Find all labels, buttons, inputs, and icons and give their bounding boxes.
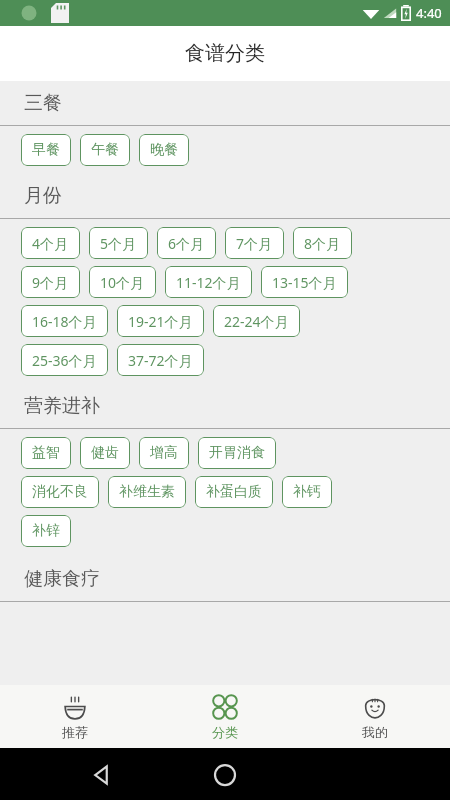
staticText: 补钙 — [293, 483, 321, 501]
button[interactable]: 益智 — [21, 437, 71, 469]
staticText: 健齿 — [91, 444, 119, 462]
staticText: 7个月 — [236, 234, 273, 253]
staticText: 16-18个月 — [32, 312, 97, 331]
button[interactable]: 午餐 — [80, 134, 130, 166]
button[interactable]: 7个月 — [225, 227, 284, 259]
button[interactable]: 19-21个月 — [117, 305, 204, 337]
staticText: 营养进补 — [24, 394, 100, 418]
staticText: 午餐 — [91, 141, 119, 159]
button[interactable]: 8个月 — [293, 227, 352, 259]
button[interactable]: 9个月 — [21, 266, 80, 298]
staticText: 5个月 — [100, 234, 137, 253]
staticText: 8个月 — [304, 234, 341, 253]
staticText: 22-24个月 — [224, 312, 289, 331]
staticText: 补维生素 — [119, 483, 175, 501]
staticText: 补锌 — [32, 522, 60, 540]
button[interactable]: 补蛋白质 — [195, 476, 273, 508]
button[interactable]: 我的 — [300, 685, 450, 748]
staticText: 37-72个月 — [128, 351, 193, 370]
button[interactable]: 晚餐 — [139, 134, 189, 166]
staticText: 4个月 — [32, 234, 69, 253]
button[interactable]: 健齿 — [80, 437, 130, 469]
staticText: 分类 — [212, 724, 238, 740]
staticText: 补蛋白质 — [206, 483, 262, 501]
button[interactable]: 25-36个月 — [21, 344, 108, 376]
staticText: 晚餐 — [150, 141, 178, 159]
staticText: 食谱分类 — [185, 41, 265, 66]
button[interactable]: 10个月 — [89, 266, 156, 298]
staticText: 推荐 — [62, 724, 88, 740]
staticText: 9个月 — [32, 273, 69, 292]
button[interactable]: 16-18个月 — [21, 305, 108, 337]
staticText: 6个月 — [168, 234, 205, 253]
button[interactable]: 37-72个月 — [117, 344, 204, 376]
staticText: 25-36个月 — [32, 351, 97, 370]
staticText: 我的 — [362, 724, 388, 740]
button[interactable]: 13-15个月 — [261, 266, 348, 298]
button[interactable]: 22-24个月 — [213, 305, 300, 337]
staticText: 11-12个月 — [176, 273, 241, 292]
staticText: 增高 — [150, 444, 178, 462]
button[interactable]: 补钙 — [282, 476, 332, 508]
staticText: 4:40 — [416, 4, 442, 22]
button[interactable]: 5个月 — [89, 227, 148, 259]
button[interactable]: 推荐 — [0, 685, 150, 748]
button[interactable]: 6个月 — [157, 227, 216, 259]
staticText: 19-21个月 — [128, 312, 193, 331]
staticText: 开胃消食 — [209, 444, 265, 462]
staticText: 13-15个月 — [272, 273, 337, 292]
staticText: 三餐 — [24, 91, 62, 115]
staticText: 健康食疗 — [24, 567, 100, 591]
button[interactable]: 增高 — [139, 437, 189, 469]
staticText: 益智 — [32, 444, 60, 462]
button[interactable]: 分类 — [150, 685, 300, 748]
staticText: 早餐 — [32, 141, 60, 159]
button[interactable]: 补维生素 — [108, 476, 186, 508]
button[interactable]: 开胃消食 — [198, 437, 276, 469]
staticText: 消化不良 — [32, 483, 88, 501]
button[interactable]: 补锌 — [21, 515, 71, 547]
button[interactable]: 消化不良 — [21, 476, 99, 508]
button[interactable]: 早餐 — [21, 134, 71, 166]
staticText: 10个月 — [100, 273, 145, 292]
staticText: 月份 — [24, 184, 62, 208]
button[interactable]: 4个月 — [21, 227, 80, 259]
button[interactable]: 11-12个月 — [165, 266, 252, 298]
